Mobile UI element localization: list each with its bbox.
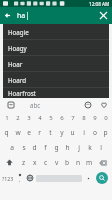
staticText: g [54,143,59,152]
button[interactable]: q [1,125,12,140]
staticText: f [44,143,47,152]
staticText: 2 [16,114,20,122]
staticText: m [86,158,93,167]
staticText: u [70,128,75,137]
staticText: 0 [104,114,108,122]
button[interactable]: Clear search [95,7,112,24]
staticText: 6 [60,114,64,122]
button[interactable]: k [84,140,95,155]
staticText: r [38,128,41,137]
staticText: 5 [49,114,53,122]
button[interactable]: Hoarfrost [3,88,109,98]
button[interactable]: t [45,125,56,140]
button[interactable]: e [23,125,34,140]
button[interactable]: 0 [100,111,111,125]
button[interactable]: w [12,125,23,140]
staticText: Hoagie [8,28,29,36]
staticText: q [4,128,9,137]
button[interactable]: Hoagie [3,24,109,39]
staticText: z [22,158,26,167]
button[interactable]: x [29,155,40,170]
button[interactable]: Settings [96,98,112,111]
button[interactable]: 4 [34,111,45,125]
staticText: j [78,143,80,152]
button[interactable]: ?123 [1,170,15,186]
button[interactable]: Hoar [3,56,109,71]
staticText: x [33,158,37,167]
button[interactable]: l [95,140,106,155]
button[interactable]: h [62,140,73,155]
staticText: 8 [82,114,86,122]
staticText: abc [30,101,41,109]
button[interactable]: Emoji [80,98,96,111]
button[interactable]: Hoagy [3,40,109,55]
button[interactable]: s [18,140,29,155]
staticText: w [15,128,21,137]
button[interactable]: c [40,155,51,170]
button[interactable]: u [67,125,78,140]
button[interactable]: z [18,155,29,170]
staticText: 4 [38,114,42,122]
staticText: i [83,128,85,137]
button[interactable]: abc [22,98,48,111]
button[interactable]: Shift [1,155,18,170]
button[interactable]: d [29,140,40,155]
button[interactable]: p [100,125,111,140]
staticText: ha [17,11,26,21]
button[interactable]: Period [83,170,93,186]
button[interactable]: Change language [25,170,35,186]
button[interactable]: g [51,140,62,155]
staticText: t [49,128,52,137]
button[interactable]: y [56,125,67,140]
staticText: d [32,143,37,152]
button[interactable]: v [51,155,62,170]
button[interactable]: Search [93,170,111,186]
staticText: y [60,128,64,137]
button[interactable]: Clipboard [0,98,22,111]
staticText: p [103,128,108,137]
button[interactable]: Backspace [95,155,111,170]
staticText: v [55,158,59,167]
button[interactable]: 8 [78,111,89,125]
staticText: s [22,143,26,152]
staticText: a [10,143,14,152]
staticText: ?123 [2,175,14,182]
button[interactable]: 6 [56,111,67,125]
button[interactable]: 5 [45,111,56,125]
staticText: Hoar [8,60,23,68]
staticText: Hoagy [8,44,27,52]
staticText: , [19,177,21,184]
button[interactable]: 1 [1,111,12,125]
button[interactable]: Hoard [3,72,109,87]
button[interactable]: b [62,155,73,170]
staticText: n [76,158,81,167]
button[interactable]: 7 [67,111,78,125]
staticText: 7 [71,114,75,122]
button[interactable]: f [40,140,51,155]
staticText: 1 [5,114,9,122]
button[interactable]: n [73,155,84,170]
button[interactable]: r [34,125,45,140]
staticText: l [100,143,102,152]
button[interactable]: i [78,125,89,140]
staticText: 9 [93,114,97,122]
button[interactable]: 2 [12,111,23,125]
button[interactable]: j [73,140,84,155]
button[interactable]: a [6,140,18,155]
staticText: h [65,143,70,152]
staticText: 12:08 AM [89,1,110,7]
staticText: o [93,128,97,137]
staticText: Hoarfrost [8,89,36,97]
button[interactable]: m [84,155,95,170]
button[interactable]: 3 [23,111,34,125]
staticText: b [65,158,70,167]
staticText: Hoard [8,76,27,84]
staticText: k [88,143,92,152]
button[interactable]: 9 [89,111,100,125]
staticText: c [44,158,48,167]
button[interactable]: Comma [15,170,25,186]
button[interactable]: Navigate up [0,7,17,24]
button[interactable]: o [89,125,100,140]
staticText: 3 [27,114,31,122]
